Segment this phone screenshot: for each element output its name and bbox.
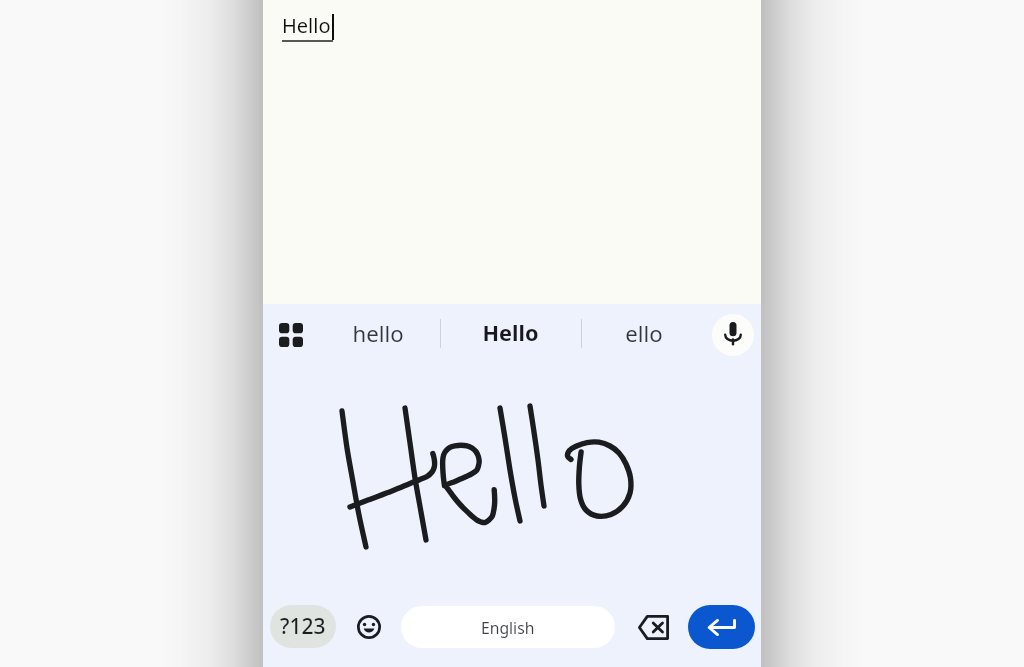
button[interactable]: Voice input	[712, 314, 754, 356]
staticText: ello	[625, 318, 663, 348]
staticText: Hello	[282, 12, 331, 39]
button[interactable]: ello	[577, 302, 710, 364]
button[interactable]: Enter	[688, 605, 755, 649]
button[interactable]: Emoji	[347, 605, 391, 649]
button[interactable]: Backspace	[629, 603, 677, 651]
button[interactable]: hello	[311, 302, 444, 364]
button[interactable]: Hello	[444, 302, 577, 364]
button[interactable]: Keyboard menu	[267, 311, 315, 359]
button[interactable]: Handwriting input area	[263, 366, 761, 590]
staticText: hello	[352, 318, 404, 348]
staticText: Hello	[482, 318, 539, 348]
staticText: English	[481, 617, 535, 638]
button[interactable]: Hello	[282, 12, 334, 42]
staticText: ?123	[280, 612, 326, 641]
button[interactable]: ?123	[270, 605, 336, 648]
button[interactable]: English	[401, 606, 615, 648]
